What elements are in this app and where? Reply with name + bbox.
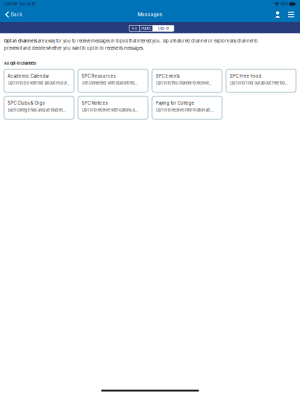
button[interactable]: Opt-in [153, 25, 174, 31]
staticText: Each college has unique studen... [8, 108, 66, 113]
staticText: Public [141, 26, 151, 30]
button[interactable]: SPC Free Food [226, 69, 296, 92]
staticText: SPC Free Food [230, 73, 262, 79]
button[interactable]: All [129, 25, 139, 31]
button[interactable]: SPC Events [152, 69, 222, 92]
staticText: Opt-in channels are a way for you to rec… [4, 38, 258, 43]
button[interactable]: SPC Clubs & Orgs [4, 96, 74, 119]
staticText: Opt in to find out about free foo... [230, 81, 288, 86]
staticText: Academic Calendar [8, 73, 50, 79]
button[interactable]: Paying for College [152, 96, 222, 119]
button[interactable]: SPC Notices [78, 96, 148, 119]
staticText: 3:00 PM Thu Jul 16 [4, 2, 35, 6]
button[interactable]: Back [1, 8, 26, 20]
staticText: SPC Resources [82, 73, 116, 79]
staticText: Get connected with student res... [82, 81, 138, 86]
button[interactable]: Academic Calendar [4, 69, 74, 92]
staticText: Opt in to this channel to receive... [156, 81, 212, 86]
staticText: Paying for College [156, 100, 195, 106]
staticText: preview it and decide whether you want t… [4, 46, 144, 51]
staticText: Opt-in [158, 26, 169, 30]
staticText: All [132, 26, 137, 30]
staticText: Opt in to receive information ab... [156, 108, 214, 113]
button[interactable]: Public [140, 25, 152, 31]
button[interactable]: SPC Resources [78, 69, 148, 92]
staticText: SPC Clubs & Orgs [8, 100, 45, 106]
staticText: Back [11, 12, 23, 17]
staticText: All opt-in channels [4, 61, 36, 66]
button[interactable]: Menu [284, 8, 298, 20]
button[interactable]: Profile [271, 8, 284, 20]
staticText: Opt in to receive notifications a... [82, 108, 138, 113]
staticText: Messages [137, 12, 162, 17]
staticText: 100% [280, 2, 288, 6]
staticText: Opt in to be notified about impor... [8, 81, 70, 86]
staticText: SPC Events [156, 73, 180, 79]
staticText: SPC Notices [82, 100, 108, 106]
